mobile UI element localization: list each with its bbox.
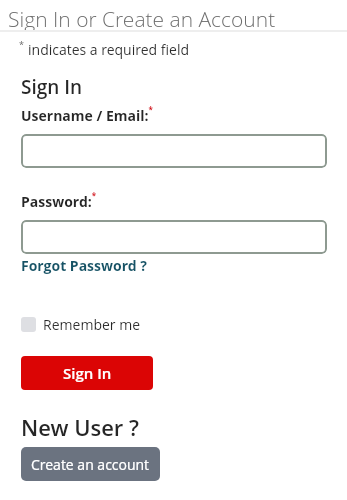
- staticText: Username / Email:*: [21, 104, 153, 125]
- staticText: *: [19, 38, 24, 50]
- staticText: Create an account: [31, 455, 150, 474]
- button[interactable]: Sign In: [21, 356, 153, 390]
- button[interactable]: Forgot Password ?: [21, 256, 147, 275]
- staticText: New User ?: [21, 412, 140, 442]
- staticText: Sign In: [21, 74, 83, 100]
- button[interactable]: Create an account: [21, 447, 160, 481]
- staticText: Sign In: [63, 363, 112, 383]
- staticText: Sign In or Create an Account: [8, 5, 276, 34]
- button[interactable]: Password: [21, 220, 327, 254]
- button[interactable]: Remember me: [21, 315, 141, 334]
- staticText: Remember me: [43, 315, 141, 334]
- staticText: Password:*: [21, 190, 97, 211]
- staticText: indicates a required field: [28, 40, 190, 59]
- button[interactable]: Username or Email: [21, 134, 327, 168]
